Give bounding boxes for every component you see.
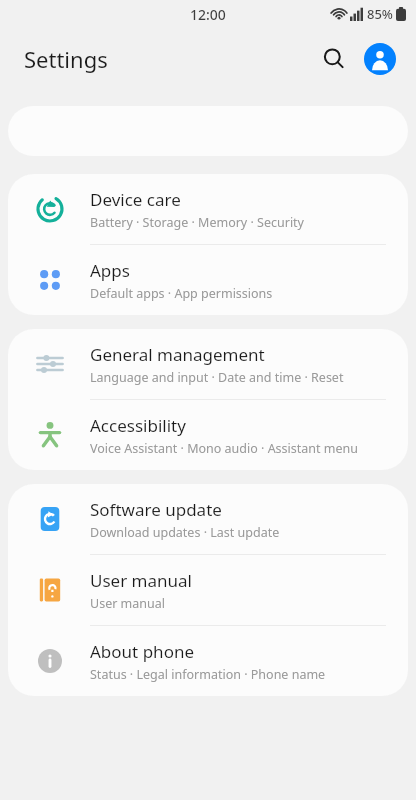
button[interactable]: General management (8, 329, 408, 400)
staticText: Software update (90, 498, 222, 521)
staticText: 12:00 (190, 5, 226, 24)
button[interactable]: User manual (8, 555, 408, 626)
staticText: Status · Legal information · Phone name (90, 666, 362, 683)
staticText: User manual (90, 595, 362, 612)
staticText: Battery · Storage · Memory · Security (90, 214, 362, 231)
staticText: Download updates · Last update (90, 524, 362, 541)
staticText: 85% (367, 5, 393, 23)
button[interactable]: Accessibility (8, 400, 408, 470)
staticText: Device care (90, 188, 181, 211)
staticText: Settings (24, 44, 108, 74)
staticText: Language and input · Date and time · Res… (90, 369, 362, 386)
button[interactable]: About phone (8, 626, 408, 696)
staticText: Accessibility (90, 414, 186, 437)
staticText: About phone (90, 640, 195, 663)
button[interactable]: Account (358, 37, 402, 81)
staticText: Default apps · App permissions (90, 285, 362, 302)
button[interactable]: Search (312, 37, 356, 81)
staticText: User manual (90, 569, 192, 592)
staticText: General management (90, 343, 265, 366)
button[interactable]: Software update (8, 484, 408, 555)
button[interactable]: Device care (8, 174, 408, 245)
staticText: Apps (90, 259, 130, 282)
staticText: Voice Assistant · Mono audio · Assistant… (90, 440, 362, 457)
button[interactable]: Apps (8, 245, 408, 315)
